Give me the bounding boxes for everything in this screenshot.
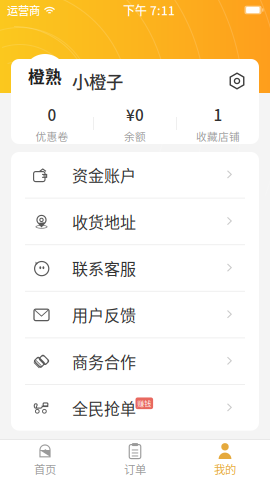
staticText: 我的: [214, 461, 236, 477]
staticText: 小橙子: [72, 68, 123, 94]
staticText: 运营商: [7, 2, 40, 18]
staticText: 橙熟: [28, 64, 62, 88]
staticText: 赚钱: [137, 398, 151, 408]
button[interactable]: 联系客服: [11, 245, 259, 291]
staticText: 0: [47, 103, 56, 125]
button[interactable]: ¥0: [94, 103, 176, 144]
button[interactable]: 我的: [180, 440, 270, 480]
staticText: 1: [213, 103, 222, 125]
button[interactable]: 0: [11, 103, 93, 144]
button[interactable]: 收货地址: [11, 199, 259, 244]
staticText: 全民抢单: [72, 396, 136, 419]
staticText: 商务合作: [72, 350, 136, 373]
staticText: ¥0: [126, 103, 144, 125]
staticText: 收藏店铺: [196, 128, 240, 144]
button[interactable]: 商务合作: [11, 338, 259, 384]
staticText: 联系客服: [72, 256, 136, 280]
button[interactable]: 全民抢单: [11, 385, 259, 431]
staticText: 余额: [124, 128, 146, 144]
button[interactable]: 资金账户: [11, 152, 259, 198]
staticText: 优惠卷: [35, 128, 68, 144]
staticText: 首页: [34, 461, 56, 477]
button[interactable]: 订单: [90, 440, 180, 480]
button[interactable]: 首页: [0, 440, 90, 480]
staticText: 用户反馈: [72, 303, 136, 326]
button[interactable]: 设置: [226, 70, 248, 92]
button[interactable]: 用户反馈: [11, 292, 259, 337]
staticText: 收货地址: [72, 210, 136, 233]
staticText: 订单: [124, 461, 146, 477]
staticText: 下午 7:11: [123, 1, 175, 19]
staticText: 资金账户: [72, 163, 136, 186]
button[interactable]: 1: [177, 103, 259, 144]
